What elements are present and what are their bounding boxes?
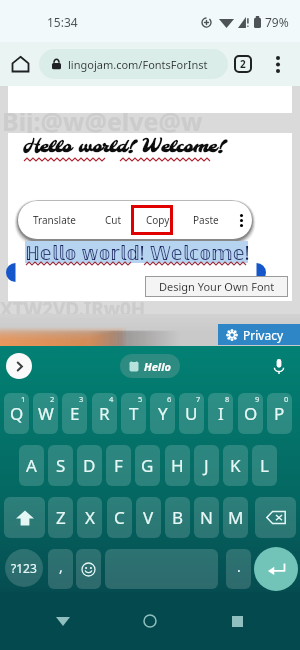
- staticText: 8: [225, 394, 230, 404]
- button[interactable]: G: [135, 445, 160, 486]
- button[interactable]: More: [230, 201, 252, 239]
- staticText: ℍ𝕖𝕝𝕝𝕠 𝕨𝕠𝕣𝕝𝕕! 𝕎𝕖𝕝𝕔𝕠𝕞𝕖!: [25, 240, 250, 266]
- staticText: C: [114, 506, 125, 529]
- staticText: B: [172, 506, 184, 529]
- button[interactable]: O: [238, 393, 263, 434]
- button[interactable]: N: [194, 497, 219, 538]
- staticText: U: [185, 402, 198, 425]
- staticText: V: [143, 506, 154, 529]
- button[interactable]: A: [19, 445, 44, 486]
- staticText: T: [129, 402, 139, 425]
- button[interactable]: Z: [48, 497, 73, 538]
- staticText: L: [260, 454, 269, 477]
- staticText: 6: [167, 394, 172, 404]
- button[interactable]: T: [121, 393, 146, 434]
- button[interactable]: Translate: [18, 201, 92, 239]
- button[interactable]: E: [62, 393, 87, 434]
- button[interactable]: F: [106, 445, 131, 486]
- staticText: 79%: [265, 14, 289, 30]
- staticText: R: [99, 402, 110, 425]
- staticText: ?123: [11, 560, 37, 576]
- staticText: P: [274, 402, 285, 425]
- button[interactable]: ?123: [5, 549, 43, 587]
- staticText: Z: [56, 506, 66, 529]
- button[interactable]: Design Your Own Font: [145, 276, 288, 297]
- staticText: H: [171, 454, 184, 477]
- staticText: 2: [240, 57, 246, 71]
- staticText: J: [204, 454, 209, 477]
- button[interactable]: Emoji: [76, 549, 101, 589]
- button[interactable]: Backspace: [255, 497, 296, 538]
- staticText: lingojam.com/FontsForInst: [68, 57, 208, 72]
- button[interactable]: M: [223, 497, 248, 538]
- staticText: A: [26, 454, 37, 477]
- staticText: 1: [21, 394, 26, 404]
- button[interactable]: S: [48, 445, 73, 486]
- button[interactable]: W: [33, 393, 58, 434]
- staticText: 9: [255, 394, 260, 404]
- staticText: S: [56, 454, 66, 477]
- staticText: E: [70, 402, 80, 425]
- button[interactable]: U: [179, 393, 204, 434]
- button[interactable]: V: [136, 497, 161, 538]
- button[interactable]: D: [77, 445, 102, 486]
- button[interactable]: Y: [150, 393, 175, 434]
- staticText: G: [141, 454, 154, 477]
- button[interactable]: ,: [48, 549, 73, 589]
- staticText: Design Your Own Font: [159, 279, 275, 294]
- button[interactable]: Home: [4, 48, 36, 80]
- staticText: 15:34: [47, 14, 78, 30]
- button[interactable]: Home: [126, 597, 174, 645]
- staticText: Copy: [146, 213, 170, 227]
- button[interactable]: .: [226, 549, 251, 589]
- staticText: Bij:@w@elve@w: [2, 104, 203, 138]
- button[interactable]: K: [223, 445, 248, 486]
- staticText: D: [83, 454, 96, 477]
- staticText: Translate: [33, 213, 77, 227]
- button[interactable]: More options: [263, 49, 293, 79]
- button[interactable]: Cut: [92, 201, 134, 239]
- button[interactable]: X: [77, 497, 102, 538]
- button[interactable]: B: [165, 497, 190, 538]
- button[interactable]: Copy: [134, 201, 182, 239]
- button[interactable]: I: [208, 393, 233, 434]
- staticText: Y: [158, 402, 168, 425]
- button[interactable]: Paste: [182, 201, 230, 239]
- button[interactable]: Tabs: [228, 49, 258, 79]
- staticText: Privacy: [243, 327, 284, 343]
- button[interactable]: Recents: [213, 597, 261, 645]
- button[interactable]: L: [252, 445, 277, 486]
- button[interactable]: lingojam.com/FontsForInst: [39, 49, 228, 79]
- staticText: Hello world! Welcome!: [23, 136, 226, 158]
- staticText: 5: [138, 394, 143, 404]
- button[interactable]: Space: [105, 549, 218, 589]
- staticText: O: [244, 402, 258, 425]
- button[interactable]: R: [92, 393, 117, 434]
- staticText: W: [38, 402, 54, 425]
- staticText: K: [230, 454, 241, 477]
- button[interactable]: Hello: [120, 354, 180, 378]
- staticText: X: [85, 506, 95, 529]
- staticText: F: [114, 454, 123, 477]
- staticText: 4: [109, 394, 114, 404]
- staticText: 0: [284, 394, 289, 404]
- staticText: ,: [59, 557, 63, 576]
- button[interactable]: Back: [39, 597, 87, 645]
- staticText: 7: [196, 394, 201, 404]
- staticText: Q: [10, 402, 24, 425]
- button[interactable]: Enter: [254, 547, 298, 591]
- button[interactable]: Shift: [4, 497, 45, 538]
- staticText: 2: [50, 394, 55, 404]
- staticText: M: [228, 506, 244, 529]
- button[interactable]: J: [194, 445, 219, 486]
- button[interactable]: C: [107, 497, 132, 538]
- button[interactable]: Q: [4, 393, 29, 434]
- button[interactable]: P: [267, 393, 292, 434]
- staticText: N: [200, 506, 213, 529]
- button[interactable]: H: [165, 445, 190, 486]
- staticText: XTW2VD.IRw0H: [0, 296, 146, 322]
- button[interactable]: Privacy: [218, 324, 300, 345]
- button[interactable]: Expand toolbar: [6, 353, 32, 379]
- button[interactable]: Voice input: [268, 355, 290, 377]
- staticText: Paste: [193, 213, 219, 227]
